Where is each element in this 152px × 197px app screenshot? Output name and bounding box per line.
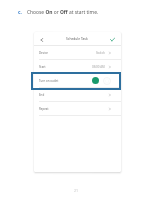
staticText: Device: [39, 51, 48, 55]
button[interactable]: Start: [34, 60, 121, 73]
staticText: Schedule Task: [66, 36, 88, 40]
staticText: Choose On or Off at start time.: [27, 9, 99, 16]
staticText: 21: [74, 188, 79, 193]
staticText: Turn on outlet: [39, 79, 59, 83]
staticText: Start: [39, 65, 46, 69]
staticText: c.: [18, 9, 22, 16]
staticText: Repeat: [39, 107, 49, 111]
staticText: End: [39, 93, 45, 97]
button[interactable]: Turn on outlet: [34, 74, 121, 87]
staticText: Switch: [96, 51, 105, 55]
button[interactable]: Back: [38, 36, 45, 43]
button[interactable]: End: [34, 88, 121, 101]
button[interactable]: Repeat: [34, 102, 121, 115]
button[interactable]: Done: [109, 36, 116, 43]
staticText: 08:00 AM: [92, 65, 105, 69]
button[interactable]: Device: [34, 46, 121, 59]
